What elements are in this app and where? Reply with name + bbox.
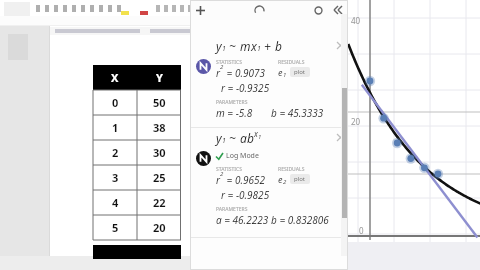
button[interactable]: plot: [290, 67, 310, 77]
staticText: y: [216, 130, 222, 146]
staticText: 25: [153, 170, 166, 185]
staticText: PARAMETERS: [216, 206, 248, 213]
staticText: 0: [359, 225, 364, 236]
staticText: r: [216, 66, 220, 80]
staticText: 1: [222, 44, 226, 54]
staticText: 1: [283, 71, 287, 79]
staticText: x: [254, 128, 258, 139]
staticText: 3: [112, 170, 119, 185]
staticText: STATISTICS: [216, 59, 242, 66]
staticText: b = 0.832806: [271, 213, 329, 227]
staticText: r: [216, 173, 220, 187]
staticText: ~: [226, 130, 240, 146]
staticText: x: [251, 38, 257, 54]
staticText: a: [240, 130, 247, 146]
staticText: 2: [220, 63, 224, 71]
staticText: m: [240, 38, 251, 54]
button[interactable]: Delete expression: [332, 128, 348, 146]
staticText: 20: [351, 116, 361, 127]
staticText: 1: [222, 136, 226, 146]
staticText: STATISTICS: [216, 166, 242, 173]
staticText: m = -5.8: [216, 106, 253, 120]
staticText: r = -0.9825: [221, 188, 270, 202]
staticText: = 0.9073: [224, 66, 266, 80]
staticText: plot: [294, 68, 306, 76]
button[interactable]: Collapse panel: [328, 0, 348, 20]
staticText: plot: [294, 175, 306, 183]
staticText: 40: [351, 15, 361, 26]
staticText: RESIDUALS: [278, 59, 305, 66]
staticText: y: [216, 38, 222, 54]
staticText: ~: [226, 38, 240, 54]
button[interactable]: y: [190, 128, 348, 238]
staticText: 1: [257, 44, 261, 54]
button[interactable]: Settings: [308, 0, 328, 20]
staticText: 22: [153, 195, 166, 210]
button[interactable]: Log Mode: [216, 151, 259, 161]
staticText: e: [278, 66, 283, 78]
staticText: 30: [153, 145, 166, 160]
staticText: 1: [258, 133, 262, 141]
staticText: X: [111, 70, 119, 85]
staticText: RESIDUALS: [278, 166, 305, 173]
staticText: e: [278, 173, 283, 185]
button[interactable]: Add expression: [190, 0, 210, 20]
button[interactable]: y: [190, 36, 348, 128]
staticText: 20: [153, 220, 166, 235]
staticText: a = 46.2223: [216, 213, 269, 227]
staticText: b: [247, 130, 254, 146]
staticText: 4: [112, 195, 119, 210]
staticText: 2: [220, 170, 224, 178]
staticText: +: [261, 38, 275, 54]
button[interactable]: Undo: [249, 0, 269, 20]
button[interactable]: Delete expression: [332, 36, 348, 54]
staticText: PARAMETERS: [216, 99, 248, 106]
staticText: 0: [112, 95, 119, 110]
staticText: Log Mode: [226, 151, 259, 161]
staticText: b: [275, 38, 282, 54]
staticText: Y: [156, 70, 163, 85]
staticText: 1: [112, 120, 119, 135]
staticText: r = -0.9325: [221, 81, 270, 95]
staticText: = 0.9652: [224, 173, 266, 187]
staticText: 2: [283, 178, 287, 186]
staticText: b = 45.3333: [271, 106, 324, 120]
staticText: 2: [112, 145, 119, 160]
button[interactable]: plot: [290, 174, 310, 184]
staticText: 50: [153, 95, 166, 110]
staticText: 38: [153, 120, 166, 135]
staticText: 5: [112, 220, 119, 235]
